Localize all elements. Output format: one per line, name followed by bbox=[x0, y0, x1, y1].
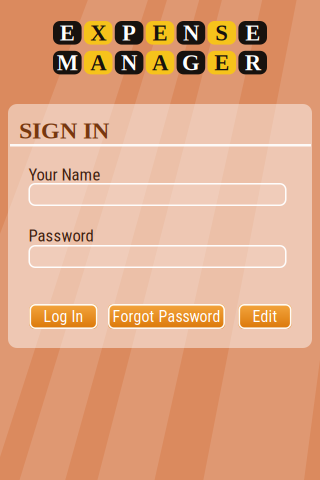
button[interactable]: Forgot Password bbox=[108, 304, 225, 329]
staticText: X bbox=[90, 20, 106, 45]
staticText: M bbox=[57, 50, 78, 75]
staticText: Forgot Password bbox=[112, 307, 220, 326]
staticText: E bbox=[214, 50, 229, 75]
button[interactable]: Log In bbox=[29, 304, 97, 329]
staticText: E bbox=[245, 20, 260, 45]
staticText: N bbox=[121, 50, 137, 75]
staticText: S bbox=[215, 20, 228, 45]
staticText: E bbox=[60, 20, 75, 45]
staticText: Password bbox=[28, 226, 93, 245]
staticText: E bbox=[152, 20, 167, 45]
staticText: Log In bbox=[43, 307, 83, 326]
button[interactable]: Edit bbox=[238, 304, 291, 329]
staticText: A bbox=[152, 50, 168, 75]
staticText: SIGN IN bbox=[19, 117, 109, 144]
staticText: Edit bbox=[252, 307, 277, 326]
staticText: R bbox=[245, 50, 261, 75]
staticText: N bbox=[183, 20, 199, 45]
staticText: G bbox=[182, 50, 200, 75]
staticText: A bbox=[90, 50, 106, 75]
staticText: Your Name bbox=[28, 165, 100, 184]
staticText: P bbox=[122, 20, 136, 45]
